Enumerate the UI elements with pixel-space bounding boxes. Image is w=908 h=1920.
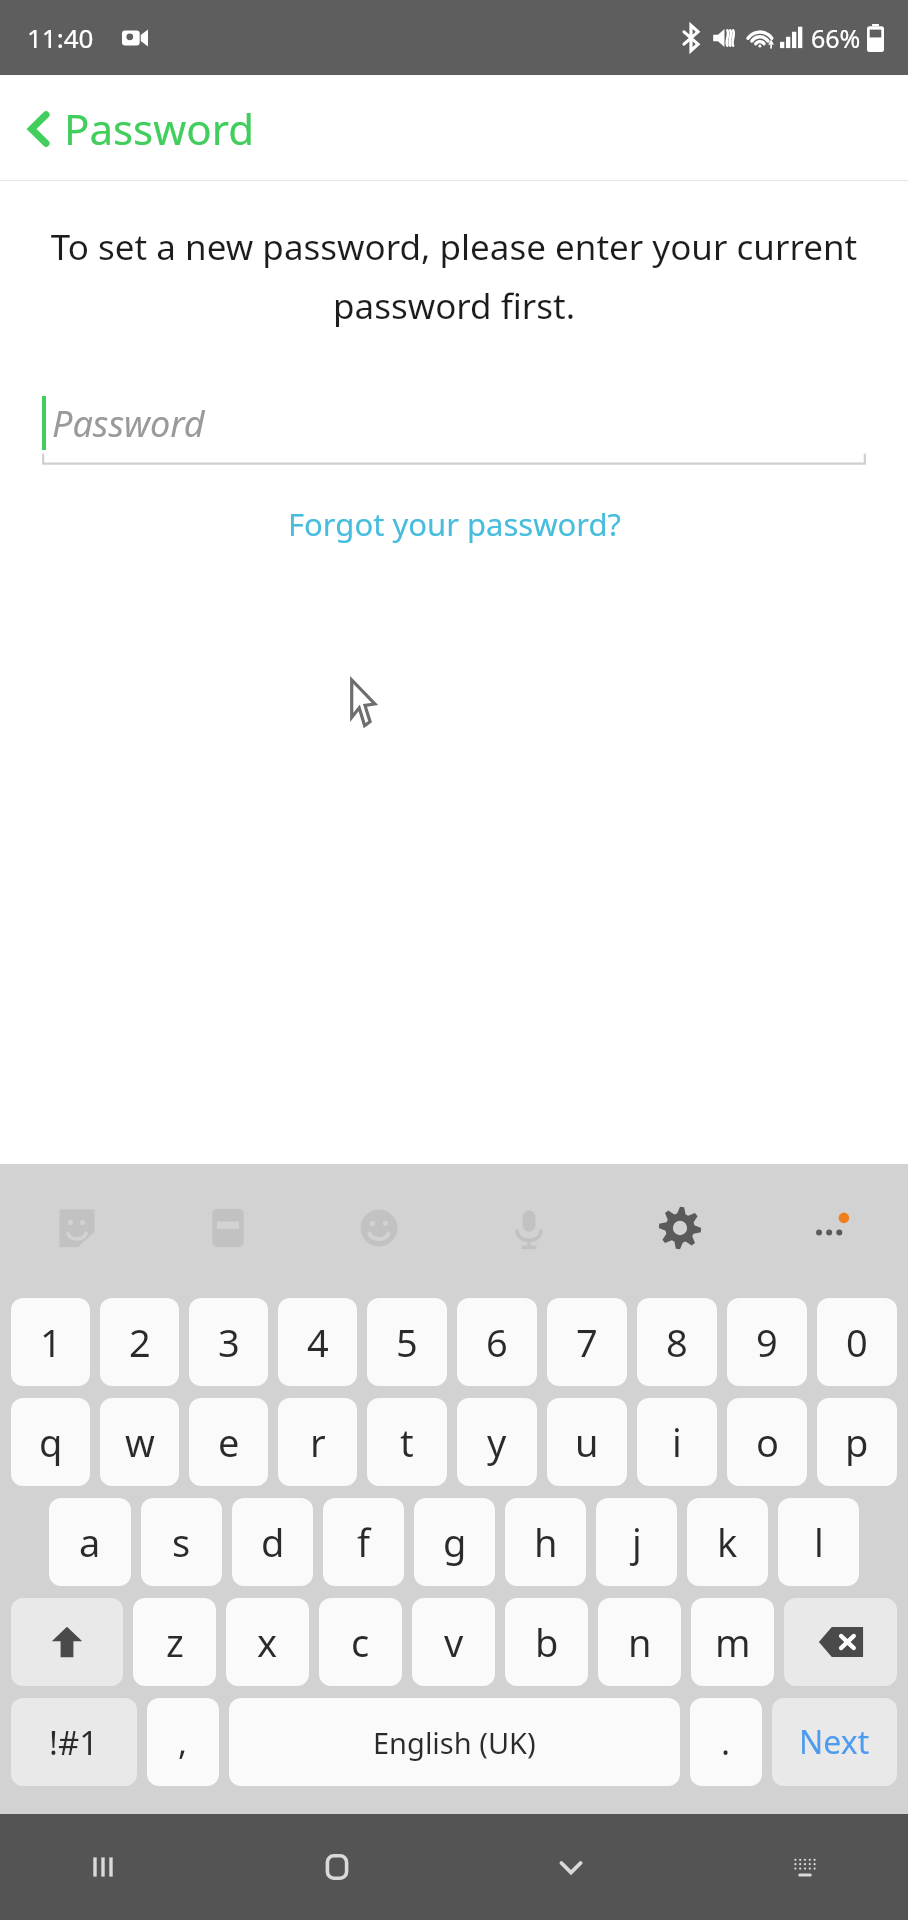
button[interactable]: n xyxy=(598,1598,681,1686)
button[interactable]: 4 xyxy=(278,1298,357,1386)
button[interactable]: a xyxy=(49,1498,131,1586)
button[interactable]: GIF xyxy=(191,1191,265,1265)
button[interactable]: l xyxy=(778,1498,859,1586)
button[interactable]: Password xyxy=(22,94,260,163)
staticText: English (UK) xyxy=(373,1723,536,1762)
staticText: q xyxy=(39,1416,63,1468)
staticText: , xyxy=(178,1719,188,1765)
staticText: 4 xyxy=(307,1316,329,1368)
button[interactable]: Password xyxy=(42,377,866,469)
button[interactable]: s xyxy=(141,1498,222,1586)
button[interactable]: d xyxy=(232,1498,313,1586)
button[interactable]: 2 xyxy=(100,1298,179,1386)
staticText: !#1 xyxy=(49,1720,99,1765)
button[interactable]: !#1 xyxy=(11,1698,137,1786)
button[interactable]: . xyxy=(690,1698,762,1786)
button[interactable]: o xyxy=(727,1398,807,1486)
staticText: . xyxy=(721,1719,731,1765)
button[interactable]: c xyxy=(319,1598,402,1686)
staticText: v xyxy=(444,1616,464,1668)
staticText: 2 xyxy=(129,1316,151,1368)
staticText: 8 xyxy=(666,1316,688,1368)
button[interactable]: f xyxy=(323,1498,404,1586)
staticText: 7 xyxy=(576,1316,598,1368)
staticText: 66% xyxy=(811,21,861,55)
staticText: 1 xyxy=(40,1316,62,1368)
button[interactable]: Hide keyboard xyxy=(528,1824,614,1910)
staticText: l xyxy=(814,1516,824,1568)
button[interactable]: 5 xyxy=(367,1298,447,1386)
staticText: 11:40 xyxy=(27,20,94,55)
button[interactable]: i xyxy=(637,1398,717,1486)
staticText: p xyxy=(845,1416,869,1468)
button[interactable]: 8 xyxy=(637,1298,717,1386)
button[interactable]: h xyxy=(505,1498,586,1586)
staticText: 0 xyxy=(846,1316,868,1368)
staticText: a xyxy=(79,1516,101,1568)
staticText: z xyxy=(166,1616,184,1668)
button[interactable]: Keyboard settings xyxy=(643,1191,717,1265)
button[interactable]: More options xyxy=(794,1191,868,1265)
staticText: x xyxy=(257,1616,278,1668)
staticText: m xyxy=(715,1616,751,1668)
button[interactable]: 9 xyxy=(727,1298,807,1386)
button[interactable]: Recent apps xyxy=(60,1824,146,1910)
button[interactable]: t xyxy=(367,1398,447,1486)
button[interactable]: z xyxy=(133,1598,216,1686)
staticText: b xyxy=(535,1616,559,1668)
staticText: 5 xyxy=(396,1316,418,1368)
button[interactable]: e xyxy=(189,1398,268,1486)
button[interactable]: w xyxy=(100,1398,179,1486)
staticText: r xyxy=(310,1416,326,1468)
staticText: e xyxy=(218,1416,240,1468)
button[interactable]: 7 xyxy=(547,1298,627,1386)
button[interactable]: Backspace xyxy=(784,1598,897,1686)
staticText: s xyxy=(172,1516,191,1568)
staticText: n xyxy=(628,1616,652,1668)
staticText: j xyxy=(632,1516,642,1568)
button[interactable]: x xyxy=(226,1598,309,1686)
button[interactable]: j xyxy=(596,1498,677,1586)
staticText: 6 xyxy=(486,1316,508,1368)
staticText: To set a new password, please enter your… xyxy=(36,223,872,329)
button[interactable]: 0 xyxy=(817,1298,897,1386)
button[interactable]: Stickers xyxy=(40,1191,114,1265)
button[interactable]: m xyxy=(691,1598,774,1686)
button[interactable]: b xyxy=(505,1598,588,1686)
staticText: g xyxy=(443,1516,467,1568)
button[interactable]: k xyxy=(687,1498,768,1586)
button[interactable]: y xyxy=(457,1398,537,1486)
button[interactable]: q xyxy=(11,1398,90,1486)
staticText: 3 xyxy=(218,1316,240,1368)
button[interactable]: Next xyxy=(772,1698,897,1786)
staticText: Next xyxy=(799,1720,870,1764)
button[interactable]: Emoji xyxy=(342,1191,416,1265)
button[interactable]: u xyxy=(547,1398,627,1486)
button[interactable]: 3 xyxy=(189,1298,268,1386)
button[interactable]: 1 xyxy=(11,1298,90,1386)
button[interactable]: Home xyxy=(294,1824,380,1910)
button[interactable]: r xyxy=(278,1398,357,1486)
button[interactable]: , xyxy=(147,1698,219,1786)
button[interactable]: v xyxy=(412,1598,495,1686)
staticText: y xyxy=(487,1416,507,1468)
staticText: h xyxy=(534,1516,558,1568)
staticText: 9 xyxy=(756,1316,778,1368)
staticText: w xyxy=(125,1416,155,1468)
staticText: d xyxy=(261,1516,285,1568)
button[interactable]: English (UK) xyxy=(229,1698,680,1786)
button[interactable]: Change keyboard xyxy=(762,1824,848,1910)
staticText: i xyxy=(672,1416,682,1468)
staticText: f xyxy=(357,1516,371,1568)
button[interactable]: Forgot your password? xyxy=(274,495,635,553)
staticText: Password xyxy=(64,100,254,157)
button[interactable]: 6 xyxy=(457,1298,537,1386)
staticText: Password xyxy=(52,399,205,448)
button[interactable]: g xyxy=(414,1498,495,1586)
staticText: u xyxy=(575,1416,599,1468)
button[interactable]: Voice input xyxy=(492,1191,566,1265)
button[interactable]: Shift xyxy=(11,1598,123,1686)
staticText: c xyxy=(351,1616,370,1668)
button[interactable]: p xyxy=(817,1398,897,1486)
staticText: o xyxy=(756,1416,779,1468)
